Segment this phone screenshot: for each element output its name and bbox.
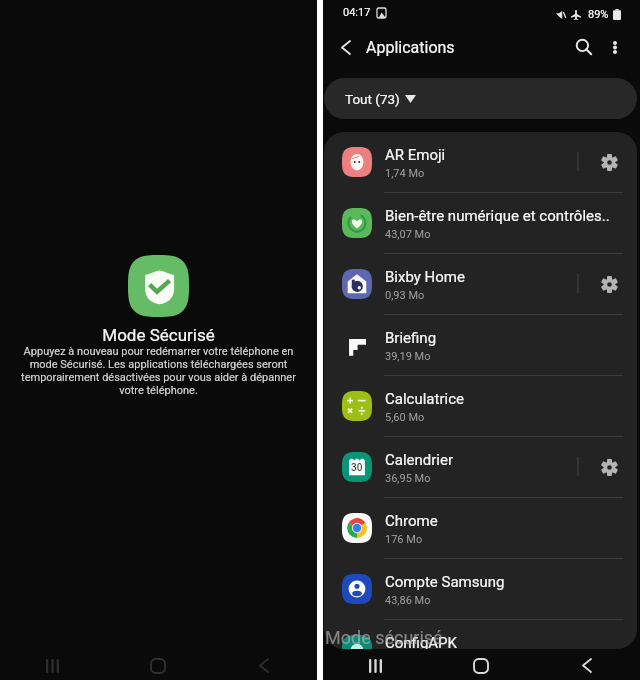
button[interactable]: Briefing xyxy=(324,315,637,375)
staticText: 5,60 Mo xyxy=(385,411,425,424)
staticText: 89% xyxy=(588,8,609,21)
staticText: Bixby Home xyxy=(385,268,465,286)
button[interactable]: Bien-être numérique et contrôles.. xyxy=(324,193,637,253)
button[interactable]: Compte Samsung xyxy=(324,559,637,619)
button[interactable]: Paramètres xyxy=(582,132,637,192)
button[interactable]: AR Emoji xyxy=(324,132,637,192)
staticText: Appuyez à nouveau pour redémarrer votre … xyxy=(19,345,298,397)
button[interactable]: Rechercher xyxy=(564,27,604,67)
button[interactable]: Applications récentes xyxy=(0,651,105,680)
staticText: Tout (73) xyxy=(345,91,400,107)
staticText: 43,86 Mo xyxy=(385,594,431,607)
staticText: 43,07 Mo xyxy=(385,228,431,241)
staticText: 1,74 Mo xyxy=(385,167,425,180)
button[interactable]: Plus d'options xyxy=(595,27,635,67)
button[interactable]: Accueil xyxy=(428,651,534,680)
staticText: Chrome xyxy=(385,512,438,530)
button[interactable]: Retour xyxy=(534,651,640,680)
button[interactable]: Chrome xyxy=(324,498,637,558)
button[interactable]: Accueil xyxy=(105,651,211,680)
staticText: Calculatrice xyxy=(385,390,464,408)
button[interactable]: Tout (73) xyxy=(324,78,637,119)
staticText: Compte Samsung xyxy=(385,573,505,591)
staticText: Briefing xyxy=(385,329,437,347)
button[interactable]: ConfigAPK xyxy=(324,620,637,649)
staticText: AR Emoji xyxy=(385,146,446,164)
button[interactable]: Retour xyxy=(211,651,317,680)
button[interactable]: Applications récentes xyxy=(323,651,428,680)
button[interactable]: Retour xyxy=(328,27,364,67)
staticText: Mode Sécurisé xyxy=(102,325,215,345)
button[interactable]: Calculatrice xyxy=(324,376,637,436)
button[interactable]: 30 xyxy=(324,437,637,497)
staticText: Applications xyxy=(366,38,455,57)
button[interactable]: Paramètres xyxy=(582,254,637,314)
staticText: Bien-être numérique et contrôles.. xyxy=(385,207,610,225)
staticText: 36,95 Mo xyxy=(385,472,431,485)
staticText: Calendrier xyxy=(385,451,454,469)
staticText: 39,19 Mo xyxy=(385,350,431,363)
button[interactable]: Paramètres xyxy=(582,437,637,497)
staticText: 30 xyxy=(351,462,363,474)
staticText: Mode sécurisé xyxy=(325,627,443,648)
staticText: 0,93 Mo xyxy=(385,289,425,302)
staticText: 176 Mo xyxy=(385,533,423,546)
staticText: ConfigAPK xyxy=(385,634,457,649)
button[interactable]: Bixby Home xyxy=(324,254,637,314)
staticText: 04:17 xyxy=(343,6,371,19)
